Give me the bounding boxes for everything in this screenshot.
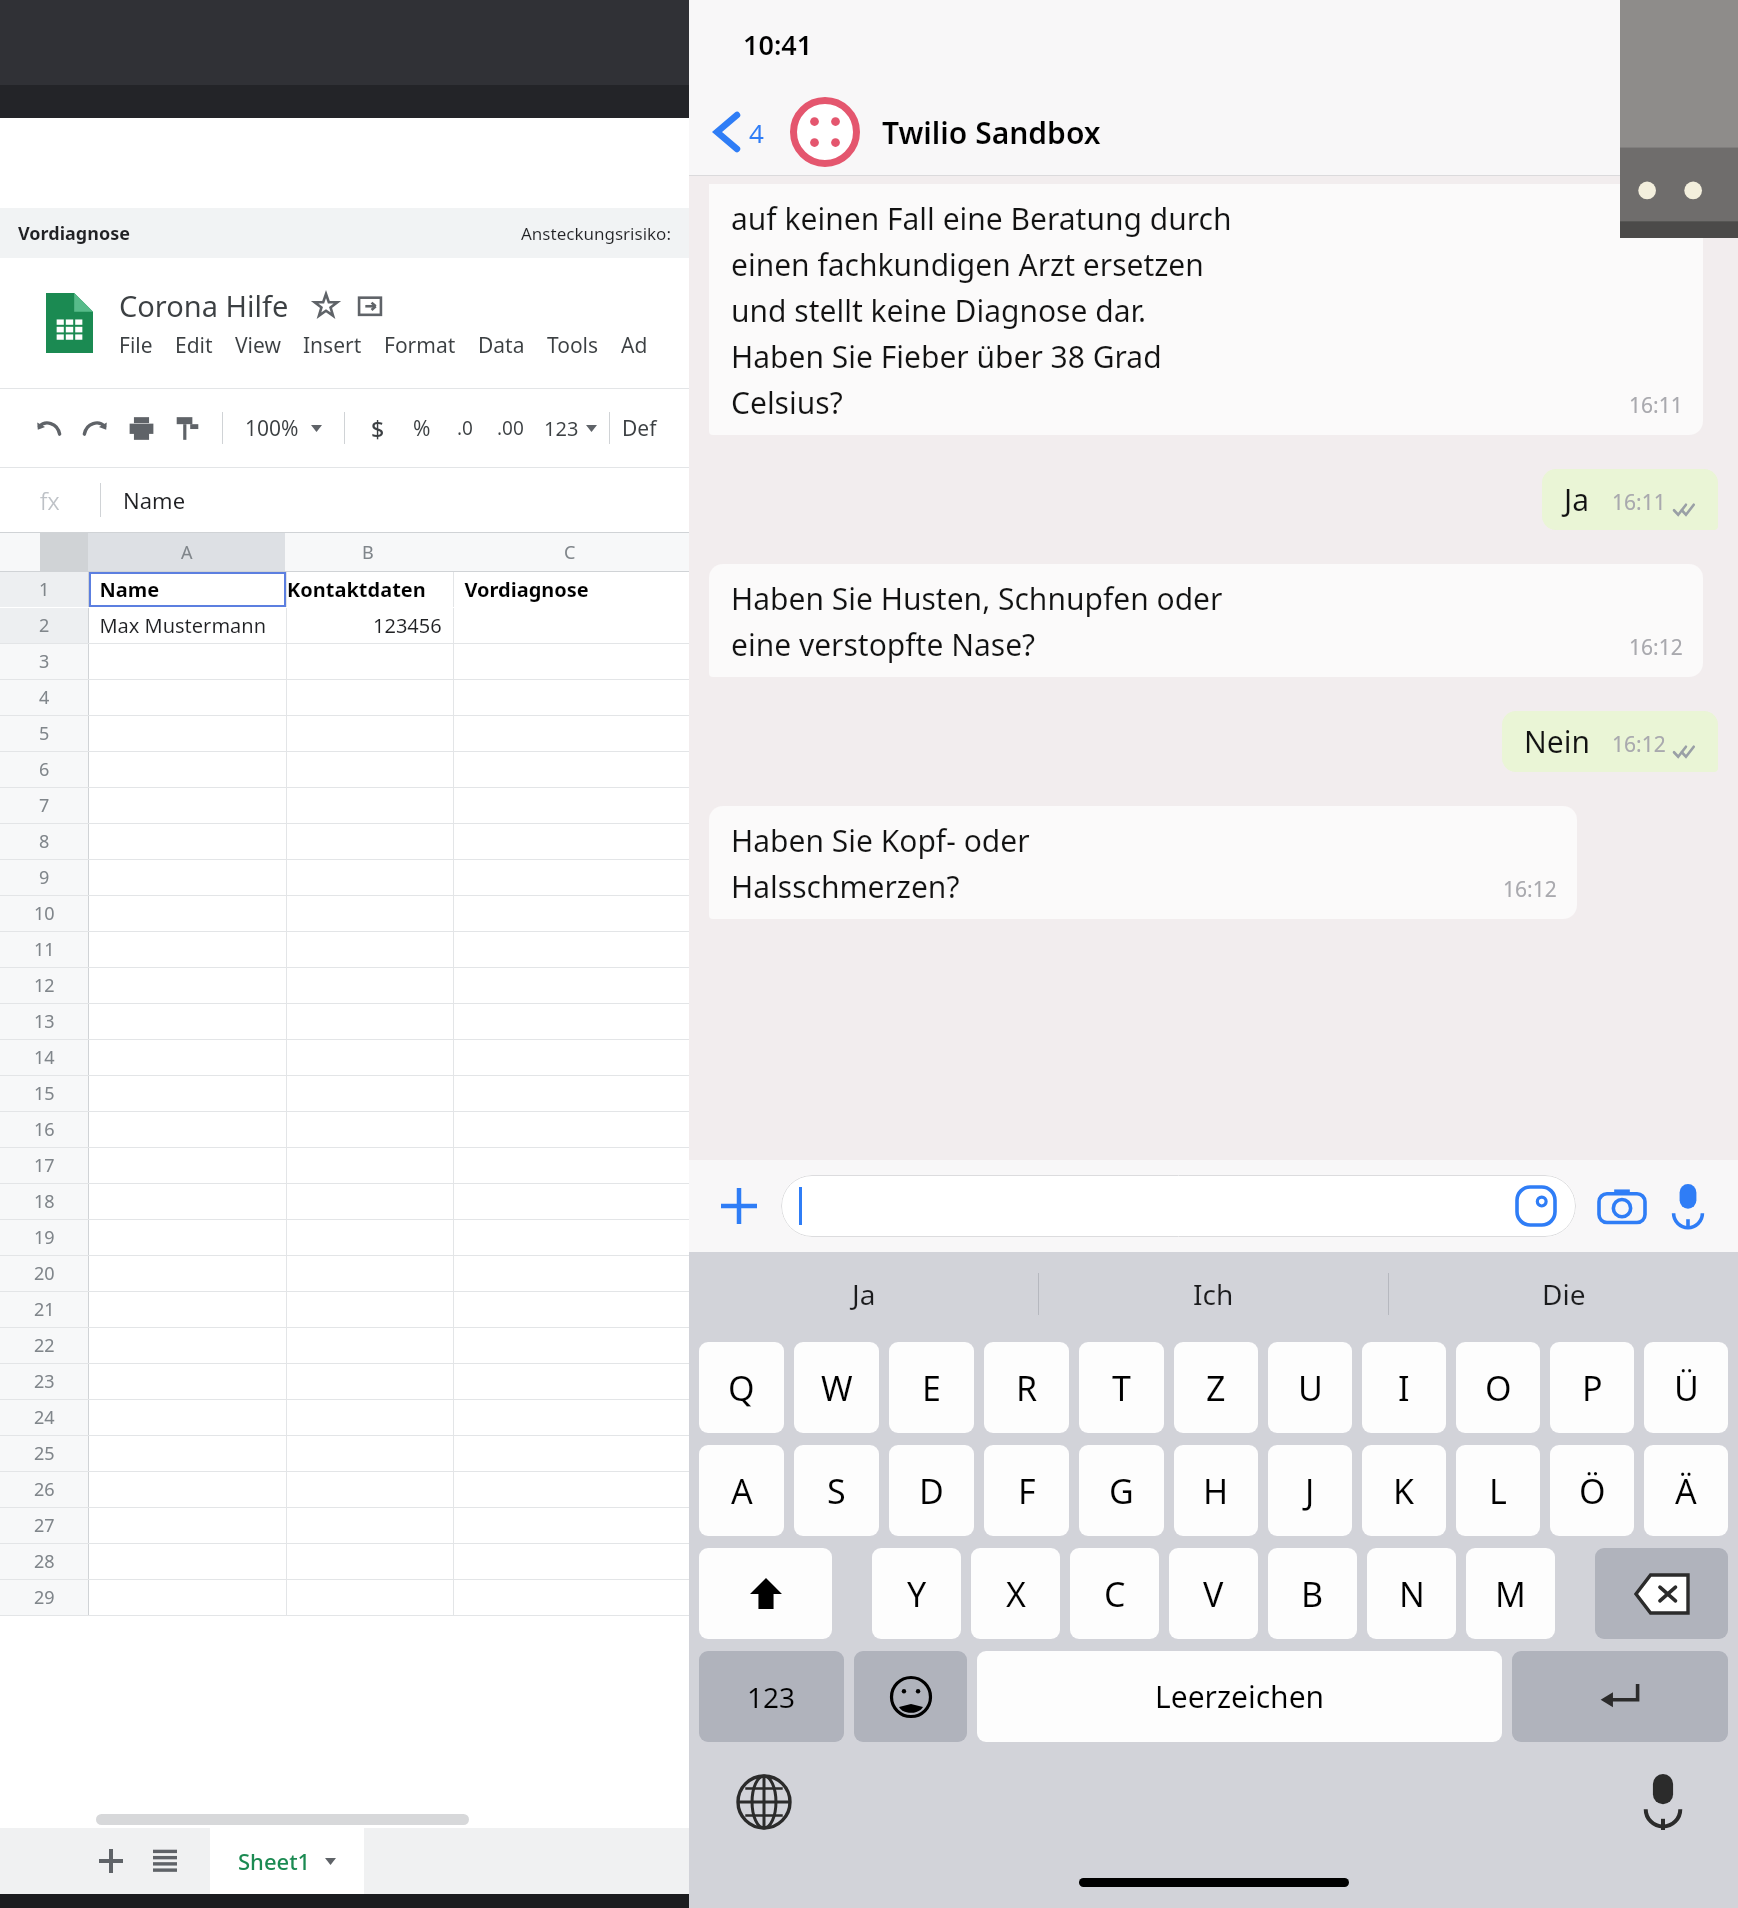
button[interactable]: W — [794, 1342, 879, 1433]
button[interactable]: Change keyboard — [729, 1767, 799, 1837]
button[interactable]: Format — [384, 331, 478, 360]
button[interactable]: Dictate — [1628, 1767, 1698, 1837]
button[interactable]: Z — [1174, 1342, 1258, 1433]
button[interactable]: H — [1174, 1445, 1258, 1536]
button[interactable]: Haben Sie Kopf- oder — [709, 806, 1577, 919]
staticText: 19 — [34, 1225, 55, 1250]
button[interactable]: Star — [311, 291, 341, 321]
button[interactable]: R — [984, 1342, 1069, 1433]
staticText: U — [1298, 1365, 1323, 1411]
button[interactable]: E — [889, 1342, 974, 1433]
staticText: V — [1203, 1571, 1224, 1617]
button[interactable]: Add sheet — [88, 1838, 134, 1884]
button[interactable]: Y — [872, 1548, 961, 1639]
staticText: 3 — [39, 649, 50, 674]
button[interactable]: Emoji — [854, 1651, 967, 1742]
button[interactable]: Haben Sie Husten, Schnupfen oder — [709, 564, 1703, 677]
button[interactable]: Ja — [689, 1252, 1038, 1336]
button[interactable]: N — [1367, 1548, 1456, 1639]
button[interactable] — [781, 1175, 1576, 1237]
button[interactable]: File — [119, 331, 175, 360]
button[interactable]: Voice message — [1660, 1178, 1716, 1234]
button[interactable]: T — [1079, 1342, 1164, 1433]
button[interactable]: B — [285, 533, 451, 571]
staticText: 123 — [544, 415, 579, 442]
button[interactable]: Paint format — [164, 405, 210, 451]
staticText: 10 — [34, 901, 55, 926]
button[interactable]: Edit — [175, 331, 235, 360]
button[interactable]: M — [1466, 1548, 1555, 1639]
button[interactable]: Ü — [1644, 1342, 1728, 1433]
staticText: 23 — [34, 1369, 55, 1394]
staticText: Insert — [303, 331, 362, 360]
button[interactable]: F — [984, 1445, 1069, 1536]
button[interactable]: Ja — [1542, 469, 1718, 530]
button[interactable]: Ich — [1039, 1252, 1388, 1336]
button[interactable]: $ — [357, 413, 399, 444]
staticText: 8 — [39, 829, 50, 854]
button[interactable]: D — [889, 1445, 974, 1536]
staticText: Kontaktdaten — [287, 576, 426, 603]
button[interactable]: Sheet1 — [210, 1828, 364, 1894]
button[interactable]: Return — [1512, 1651, 1728, 1742]
button[interactable]: 100% — [235, 414, 332, 443]
button[interactable]: % — [399, 414, 445, 443]
button[interactable]: Defa — [622, 414, 663, 443]
button[interactable]: .00 — [485, 415, 536, 441]
button[interactable]: Redo — [72, 405, 118, 451]
button[interactable]: All sheets — [142, 1838, 188, 1884]
button[interactable]: Attach — [711, 1178, 767, 1234]
button[interactable]: 123 — [699, 1651, 844, 1742]
staticText: N — [1399, 1571, 1425, 1617]
button[interactable]: S — [794, 1445, 879, 1536]
staticText: 4 — [749, 115, 764, 150]
button[interactable]: Backspace — [1595, 1548, 1728, 1639]
button[interactable]: Print — [118, 405, 164, 451]
staticText: Haben Sie Fieber über 38 Grad — [731, 336, 1162, 377]
button[interactable]: J — [1268, 1445, 1352, 1536]
button[interactable]: X — [971, 1548, 1060, 1639]
button[interactable]: Data — [478, 331, 547, 360]
button[interactable]: auf keinen Fall eine Beratung durch — [709, 184, 1703, 435]
button[interactable]: Ad — [621, 331, 670, 360]
button[interactable]: U — [1268, 1342, 1352, 1433]
button[interactable]: Insert — [303, 331, 384, 360]
button[interactable]: V — [1169, 1548, 1258, 1639]
button[interactable]: Tools — [547, 331, 621, 360]
button[interactable]: Q — [699, 1342, 784, 1433]
button[interactable]: Ä — [1644, 1445, 1728, 1536]
button[interactable]: A — [88, 533, 285, 571]
button[interactable]: C — [451, 533, 689, 571]
button[interactable]: Camera — [1594, 1178, 1650, 1234]
button[interactable]: B — [1268, 1548, 1357, 1639]
staticText: Ja — [852, 1275, 876, 1313]
button[interactable]: Undo — [26, 405, 72, 451]
button[interactable]: 123 — [536, 415, 597, 442]
staticText: 7 — [39, 793, 50, 818]
button[interactable]: Die — [1389, 1252, 1738, 1336]
button[interactable]: Move to folder — [355, 291, 385, 321]
staticText: 25 — [34, 1441, 55, 1466]
staticText: E — [922, 1365, 941, 1411]
button[interactable]: O — [1456, 1342, 1540, 1433]
staticText: Celsius? — [731, 382, 843, 423]
button[interactable]: P — [1550, 1342, 1634, 1433]
button[interactable]: A — [699, 1445, 784, 1536]
staticText: 18 — [34, 1189, 55, 1214]
staticText: S — [827, 1468, 846, 1514]
button[interactable]: Ö — [1550, 1445, 1634, 1536]
staticText: Max Mustermann — [89, 612, 267, 639]
button[interactable]: K — [1362, 1445, 1446, 1536]
button[interactable]: Video call — [1660, 103, 1718, 161]
button[interactable]: Leerzeichen — [977, 1651, 1502, 1742]
button[interactable]: L — [1456, 1445, 1540, 1536]
button[interactable]: View — [235, 331, 303, 360]
button[interactable]: .0 — [445, 415, 485, 441]
button[interactable]: G — [1079, 1445, 1164, 1536]
button[interactable]: Shift — [699, 1548, 832, 1639]
staticText: Ä — [1675, 1468, 1697, 1514]
button[interactable]: Back, 4 unread — [707, 113, 772, 151]
button[interactable]: Nein — [1502, 711, 1718, 772]
button[interactable]: I — [1362, 1342, 1446, 1433]
button[interactable]: C — [1070, 1548, 1159, 1639]
